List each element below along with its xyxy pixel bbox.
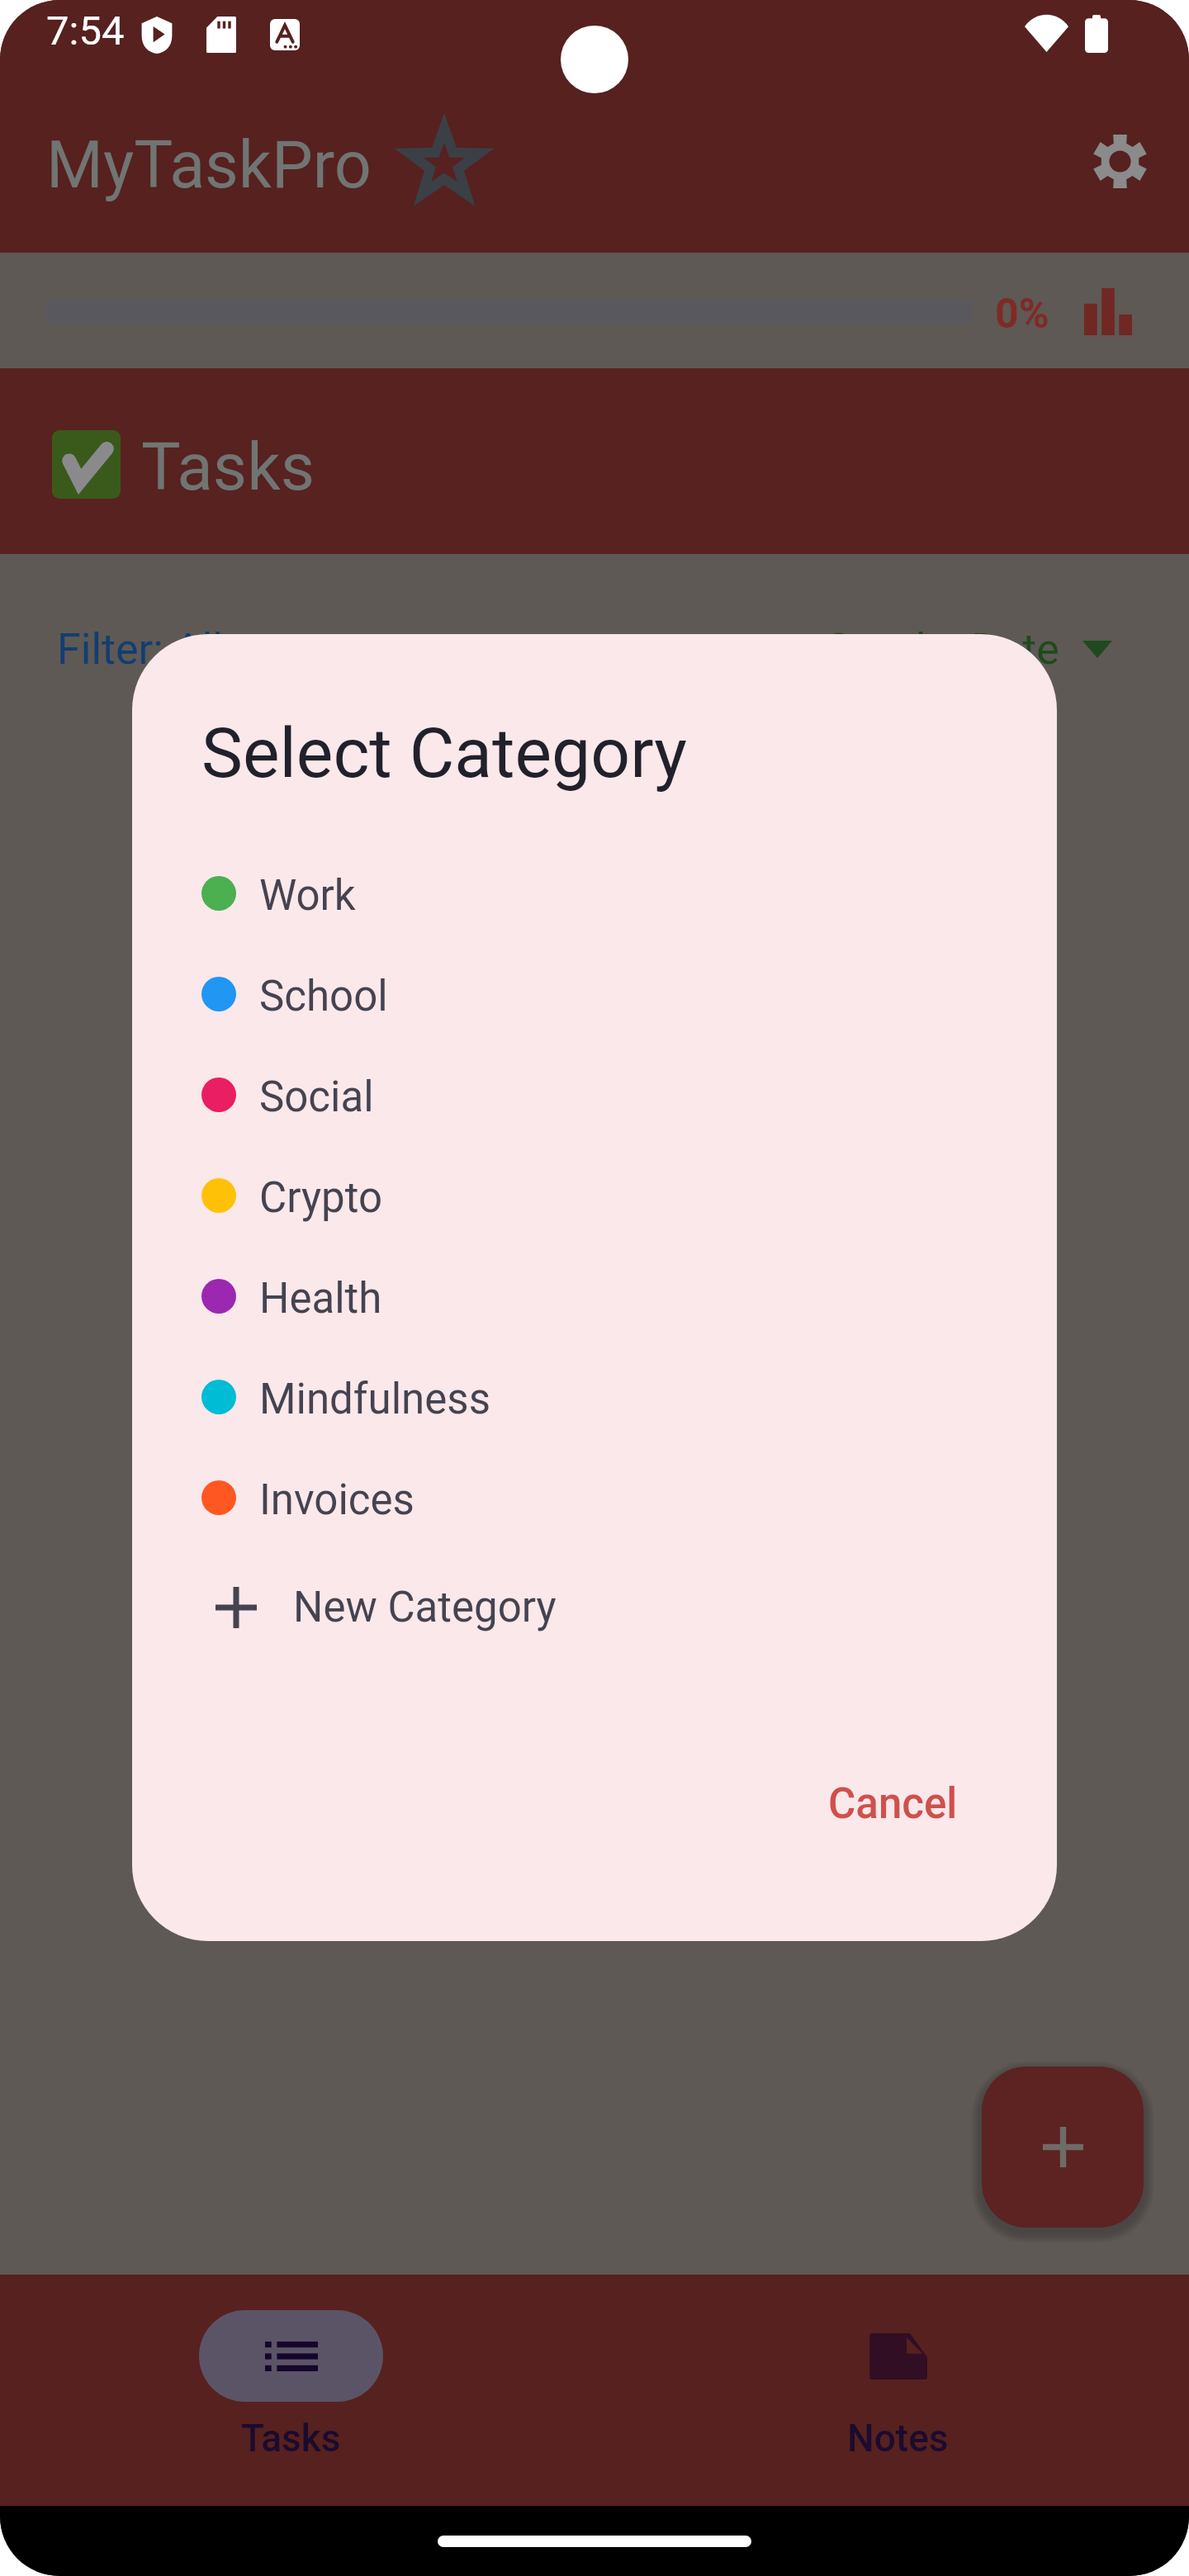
button[interactable]: Settings — [1074, 116, 1165, 206]
staticText: Tasks — [141, 429, 315, 506]
button[interactable]: Favorite — [386, 109, 502, 220]
staticText: Health — [259, 1274, 382, 1324]
staticText: Notes — [847, 2416, 949, 2460]
button[interactable]: Work — [132, 843, 1057, 944]
staticText: 7:54 — [46, 7, 125, 54]
staticText: Filter: All — [57, 624, 223, 675]
button[interactable]: Cancel — [798, 1758, 988, 1850]
staticText: MyTaskPro — [46, 127, 372, 204]
button[interactable]: Crypto — [132, 1145, 1057, 1246]
staticText: School — [259, 972, 388, 1021]
staticText: Tasks — [241, 2416, 341, 2460]
button[interactable]: Tasks — [198, 2275, 383, 2506]
button[interactable]: Health — [132, 1246, 1057, 1347]
staticText: New Category — [293, 1583, 557, 1632]
button[interactable]: Social — [132, 1044, 1057, 1145]
staticText: Sort by Date — [826, 624, 1059, 675]
button[interactable]: Mindfulness — [132, 1347, 1057, 1447]
staticText: Work — [259, 871, 356, 921]
button[interactable]: Add task — [982, 2067, 1144, 2228]
staticText: Social — [259, 1073, 374, 1122]
staticText: Crypto — [259, 1173, 382, 1223]
staticText: Cancel — [828, 1779, 958, 1829]
staticText: Select Category — [201, 713, 688, 793]
button[interactable]: Notes — [805, 2275, 990, 2506]
staticText: 0% — [995, 290, 1049, 339]
staticText: Invoices — [259, 1475, 414, 1525]
staticText: Mindfulness — [259, 1375, 490, 1424]
button[interactable]: New Category — [132, 1557, 1057, 1658]
button[interactable]: Invoices — [132, 1447, 1057, 1548]
button[interactable]: School — [132, 944, 1057, 1044]
